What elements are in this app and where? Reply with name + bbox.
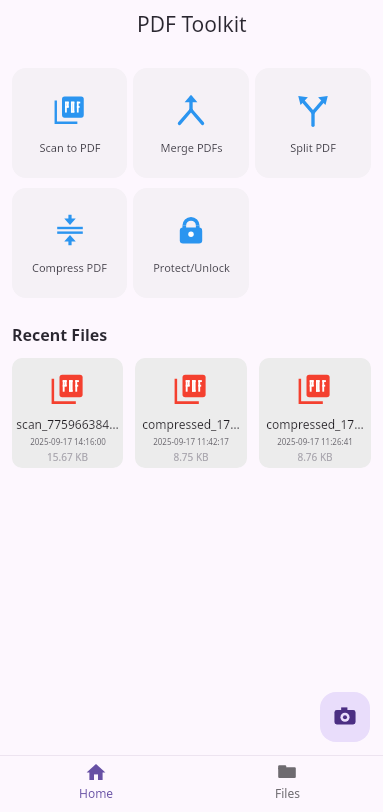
- button[interactable]: compressed_17…: [135, 358, 247, 468]
- button[interactable]: Split PDF: [255, 68, 371, 178]
- button[interactable]: Home: [51, 762, 141, 801]
- staticText: 8.75 KB: [173, 450, 209, 464]
- staticText: PDF Toolkit: [137, 10, 247, 39]
- staticText: Protect/Unlock: [153, 260, 230, 275]
- staticText: compressed_17…: [266, 416, 364, 432]
- staticText: Home: [79, 785, 114, 801]
- staticText: Compress PDF: [32, 260, 107, 275]
- button[interactable]: compressed_17…: [259, 358, 371, 468]
- button[interactable]: Files: [242, 762, 332, 801]
- staticText: Split PDF: [290, 140, 336, 155]
- staticText: Files: [275, 785, 300, 801]
- staticText: 2025-09-17 14:16:00: [30, 436, 106, 447]
- button[interactable]: Scan to PDF: [12, 68, 127, 178]
- staticText: compressed_17…: [142, 416, 240, 432]
- button[interactable]: Merge PDFs: [133, 68, 249, 178]
- staticText: 15.67 KB: [47, 450, 88, 464]
- staticText: Scan to PDF: [39, 140, 101, 155]
- staticText: Merge PDFs: [160, 140, 223, 155]
- button[interactable]: scan_775966384…: [12, 358, 123, 468]
- button[interactable]: Scan with camera: [320, 692, 370, 742]
- staticText: scan_775966384…: [16, 416, 119, 432]
- staticText: 8.76 KB: [297, 450, 333, 464]
- button[interactable]: Protect/Unlock: [133, 188, 249, 298]
- staticText: 2025-09-17 11:42:17: [153, 436, 229, 447]
- staticText: Recent Files: [12, 324, 108, 346]
- button[interactable]: Compress PDF: [12, 188, 127, 298]
- staticText: 2025-09-17 11:26:41: [277, 436, 353, 447]
